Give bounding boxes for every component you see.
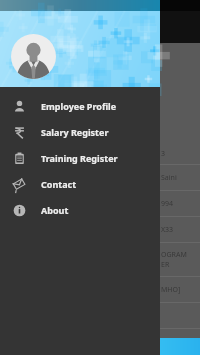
staticText: About (41, 204, 69, 216)
staticText: Training Register (41, 152, 118, 164)
staticText: Contact (41, 178, 77, 190)
staticText: MHO] (161, 285, 181, 295)
staticText: Salary Register (41, 126, 109, 138)
staticText: OGRAM ER (161, 250, 187, 270)
button[interactable]: Employee Profile (0, 93, 160, 119)
button[interactable]: Training Register (0, 145, 160, 171)
button[interactable]: Contact (0, 171, 160, 197)
staticText: Employee Profile (41, 100, 117, 112)
staticText: 994 (161, 199, 174, 209)
staticText: Saini (161, 173, 177, 183)
button[interactable]: About (0, 197, 160, 223)
staticText: 3 (161, 149, 166, 159)
staticText: X33 (161, 225, 174, 235)
button[interactable]: Salary Register (0, 119, 160, 145)
